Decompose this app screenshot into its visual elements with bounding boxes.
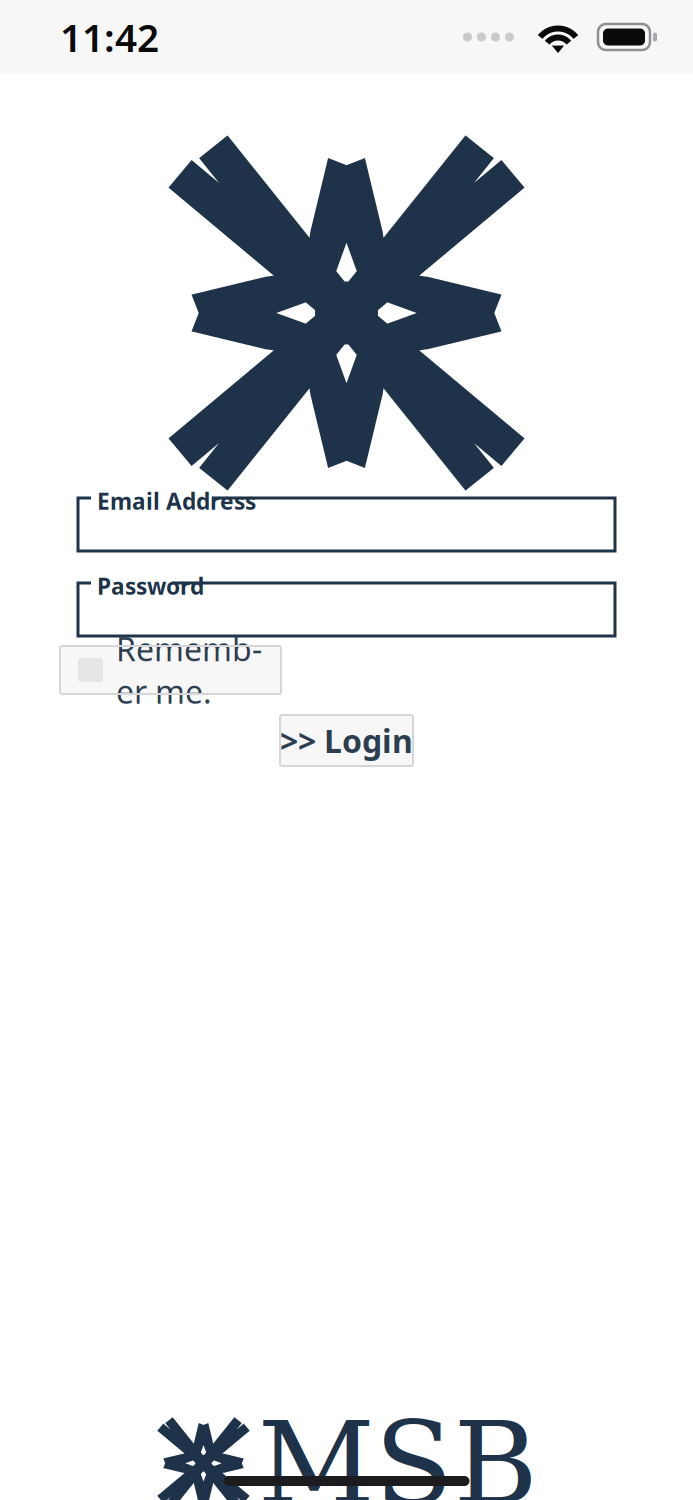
staticText: Remember me. [116,627,262,712]
staticText: 11:42 [60,11,159,63]
button[interactable]: >> Login [280,715,413,766]
staticText: Email Address [97,486,256,516]
button[interactable]: Remember me. [60,646,281,694]
staticText: Password [97,571,204,601]
staticText: >> Login [280,719,413,762]
staticText: MSB [257,1396,537,1500]
